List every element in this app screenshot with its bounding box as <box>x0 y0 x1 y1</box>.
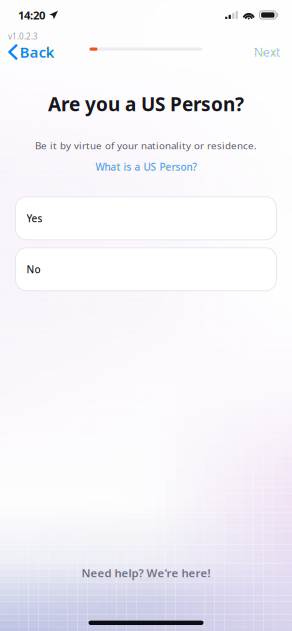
staticText: 14:20 <box>18 7 45 23</box>
staticText: Be it by virtue of your nationality or r… <box>35 139 257 152</box>
staticText: Need help? We're here! <box>81 565 210 581</box>
button[interactable]: What is a US Person? <box>91 159 200 175</box>
staticText: Back <box>20 42 55 62</box>
staticText: Yes <box>26 211 42 225</box>
staticText: v1.0.2.3 <box>8 31 38 42</box>
staticText: Are you a US Person? <box>48 91 244 117</box>
button[interactable]: Need help? We're here! <box>75 562 216 584</box>
button[interactable]: No <box>15 248 276 291</box>
staticText: Next <box>254 44 280 60</box>
button[interactable]: Next <box>248 43 286 61</box>
staticText: No <box>26 262 40 276</box>
staticText: What is a US Person? <box>95 160 196 174</box>
button[interactable]: Yes <box>15 197 276 240</box>
button[interactable]: Back <box>0 42 61 62</box>
